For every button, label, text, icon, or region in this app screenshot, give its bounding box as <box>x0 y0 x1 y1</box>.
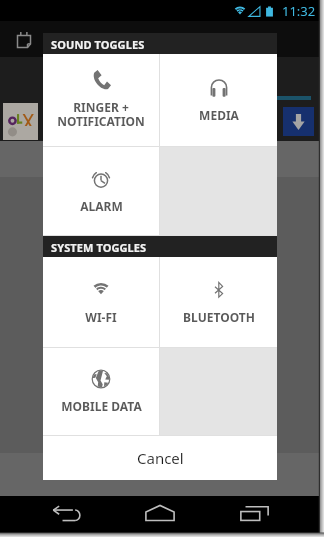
button[interactable]: Home <box>133 496 187 530</box>
staticText: RINGER + NOTIFICATION <box>57 99 145 130</box>
staticText: SYSTEM TOGGLES <box>51 240 147 255</box>
staticText: MOBILE DATA <box>61 398 142 414</box>
button[interactable]: MEDIA <box>160 54 277 146</box>
button[interactable]: Recents <box>228 497 281 530</box>
staticText: 11:32 <box>282 2 316 20</box>
button[interactable]: RINGER + NOTIFICATION <box>43 54 159 146</box>
button[interactable]: ALARM <box>43 147 159 235</box>
staticText: SOUND TOGGLES <box>51 37 145 52</box>
staticText: BLUETOOTH <box>183 309 255 325</box>
staticText: MEDIA <box>199 107 239 123</box>
button[interactable]: Cancel <box>43 436 277 480</box>
staticText: WI-FI <box>85 309 117 325</box>
staticText: ALARM <box>80 198 123 214</box>
button[interactable]: MOBILE DATA <box>43 348 159 435</box>
button[interactable]: Back <box>41 497 93 530</box>
button[interactable]: WI-FI <box>43 257 159 347</box>
button[interactable]: BLUETOOTH <box>160 257 277 347</box>
staticText: Cancel <box>137 448 184 468</box>
